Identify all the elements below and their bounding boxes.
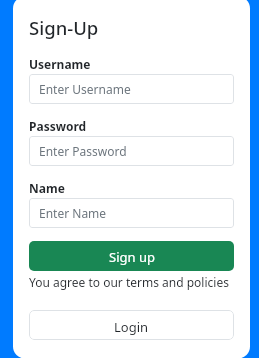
staticText: Sign up [109, 248, 155, 266]
staticText: Sign-Up [29, 15, 99, 40]
staticText: Enter Name [39, 205, 107, 221]
staticText: Enter Password [39, 143, 127, 159]
button[interactable]: Sign up [29, 241, 234, 271]
staticText: Username [29, 56, 91, 72]
staticText: Login [114, 318, 149, 336]
button[interactable]: Enter Username [29, 74, 234, 104]
button[interactable]: Login [29, 310, 234, 340]
button[interactable]: Enter Password [29, 136, 234, 166]
staticText: You agree to our terms and policies [29, 274, 229, 290]
staticText: Enter Username [39, 81, 131, 97]
staticText: Name [29, 180, 65, 196]
button[interactable]: Enter Name [29, 198, 234, 228]
staticText: Password [29, 118, 87, 134]
